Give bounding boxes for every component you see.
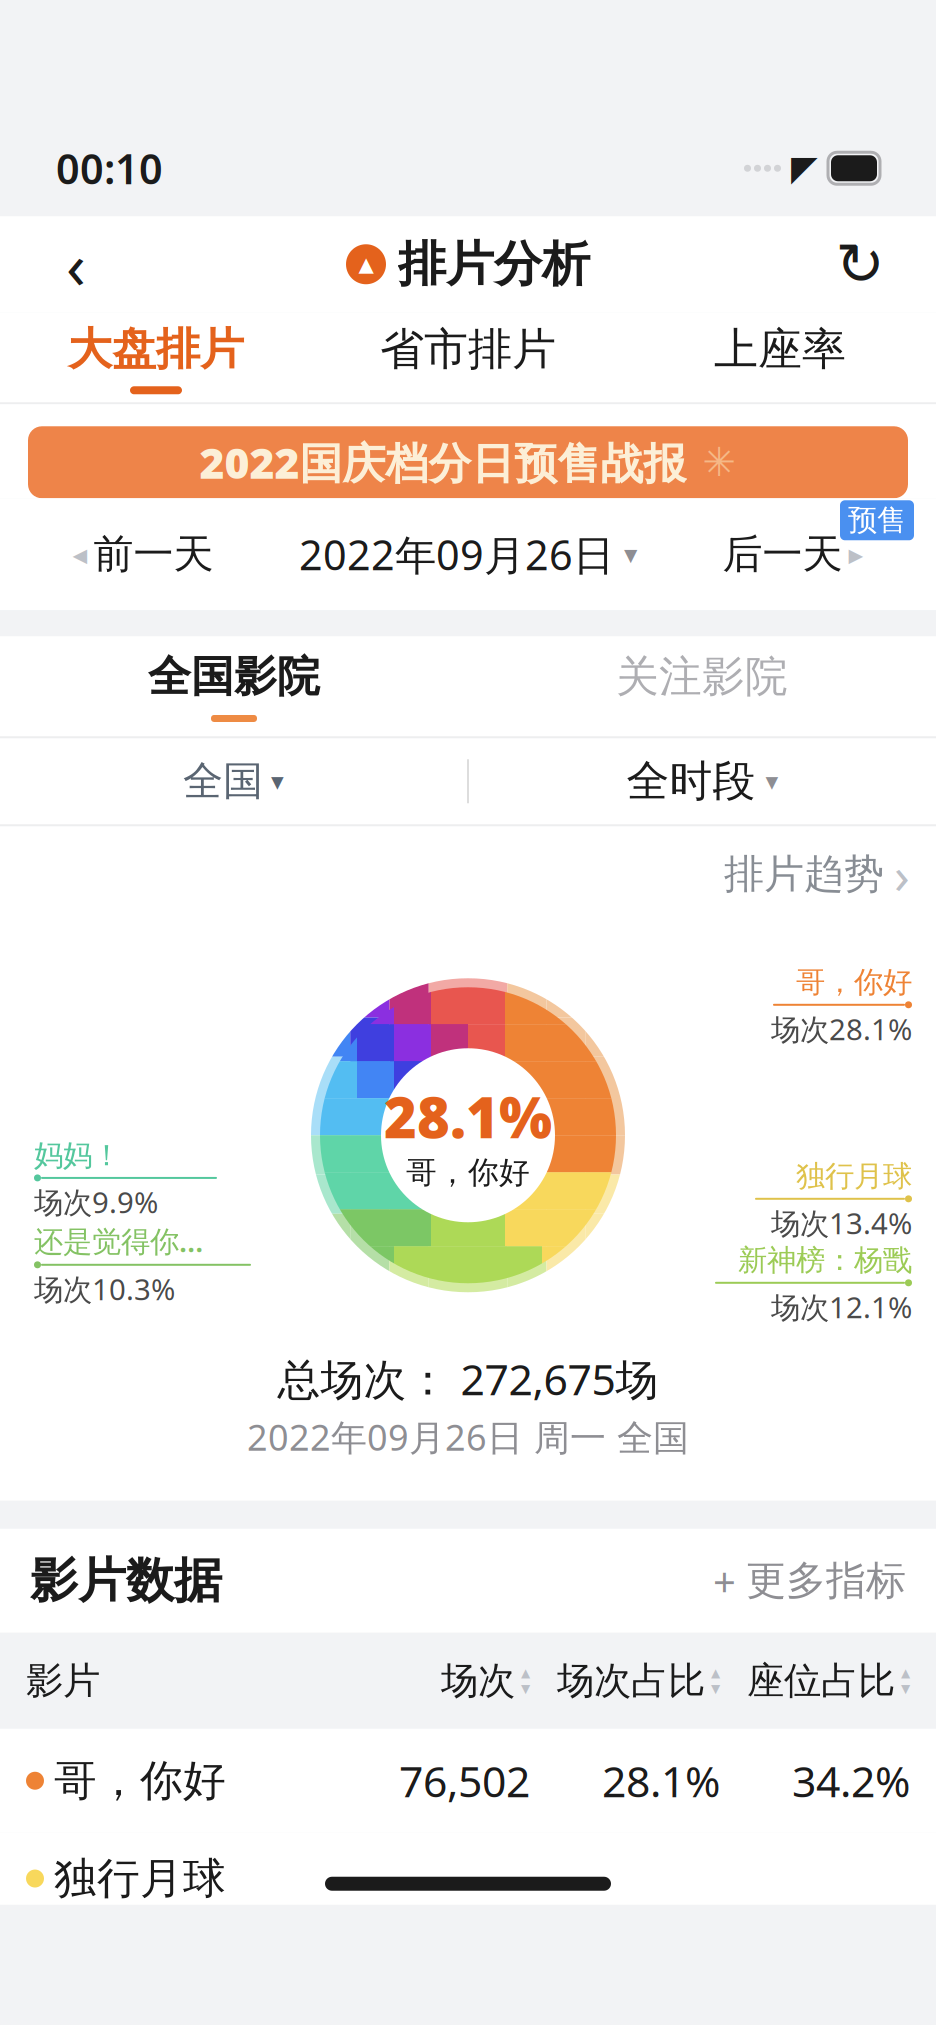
staticText: 总场次： 272,675场 [277,1350,658,1407]
button[interactable]: 全国影院 [0,636,468,736]
staticText: › [894,841,910,908]
staticText: 场次 [441,1658,515,1704]
staticText: 独行月球 [54,1852,226,1905]
staticText: ✳ [702,440,736,485]
staticText: 上座率 [714,322,846,376]
staticText: ▾ [765,767,778,796]
staticText: 排片趋势 [724,850,884,899]
staticText: 场次9.9% [34,1182,158,1221]
staticText: 2022年09月26日 周一 全国 [247,1413,689,1461]
staticText: 2022年09月26日 [299,527,614,582]
staticText: + [713,1554,736,1607]
button[interactable]: 大盘排片 [0,312,312,404]
button[interactable]: Back [40,228,112,300]
button[interactable]: 后一天 [678,516,908,592]
staticText: 更多指标 [746,1556,906,1605]
button[interactable]: 2022年09月26日 [299,516,637,592]
staticText: 前一天 [93,530,213,579]
staticText: 2022国庆档分日预售战报 [199,434,686,491]
button[interactable]: 上座率 [624,312,936,404]
button[interactable]: 场次占比 [530,1658,720,1704]
staticText: 影片数据 [30,1551,222,1610]
staticText: 场次13.4% [771,1203,912,1242]
staticText: ‹ [66,222,86,307]
button[interactable]: 哥，你好 [0,1729,936,1833]
staticText: ▲ [711,1666,720,1680]
staticText: ◂ [72,538,87,571]
button[interactable]: 全时段 [469,738,936,824]
staticText: ▼ [711,1682,720,1695]
staticText: 全国 [183,757,263,806]
staticText: 新神榜：杨戬 [738,1242,912,1278]
staticText: ▲ [901,1666,910,1680]
staticText: 00:10 [56,141,163,196]
staticText: ▼ [901,1682,910,1695]
staticText: 全国影院 [148,651,320,703]
staticText: ↻ [835,231,884,298]
staticText: ◤ [791,149,818,188]
staticText: 预售 [848,502,906,538]
staticText: 34.2% [792,1752,910,1809]
staticText: 还是觉得你… [34,1221,203,1260]
button[interactable]: + [713,1554,906,1607]
staticText: ▾ [624,539,637,569]
staticText: 妈妈！ [34,1137,121,1173]
staticText: 哥，你好 [54,1754,226,1807]
staticText: 28.1% [602,1752,720,1809]
staticText: 关注影院 [616,651,788,703]
button[interactable]: 关注影院 [468,636,936,736]
staticText: ▾ [271,767,284,796]
staticText: 76,502 [399,1752,530,1809]
button[interactable]: 排片趋势 [698,826,936,922]
staticText: 场次28.1% [771,1009,912,1048]
button[interactable]: 场次 [380,1658,530,1704]
staticText: 场次占比 [557,1658,705,1704]
staticText: 后一天 [722,530,842,579]
staticText: 座位占比 [747,1658,895,1704]
button[interactable]: 座位占比 [720,1658,910,1704]
staticText: 场次10.3% [34,1269,175,1308]
staticText: ▲ [358,253,373,276]
staticText: ▸ [848,538,863,571]
staticText: 影片 [26,1658,100,1704]
staticText: 场次12.1% [771,1287,912,1326]
staticText: ▲ [521,1666,530,1680]
button[interactable]: ◂ [28,516,258,592]
staticText: 全时段 [626,755,755,807]
button[interactable]: 全国 [0,738,467,824]
staticText: 28.1% [384,1079,552,1154]
staticText: ▼ [521,1682,530,1695]
staticText: 哥，你好 [406,1154,530,1191]
button[interactable]: 省市排片 [312,312,624,404]
staticText: 大盘排片 [68,322,244,376]
button[interactable]: Share [824,228,896,300]
staticText: 排片分析 [398,235,590,294]
staticText: 独行月球 [796,1158,912,1194]
staticText: 省市排片 [380,322,556,376]
staticText: 哥，你好 [796,964,912,1000]
